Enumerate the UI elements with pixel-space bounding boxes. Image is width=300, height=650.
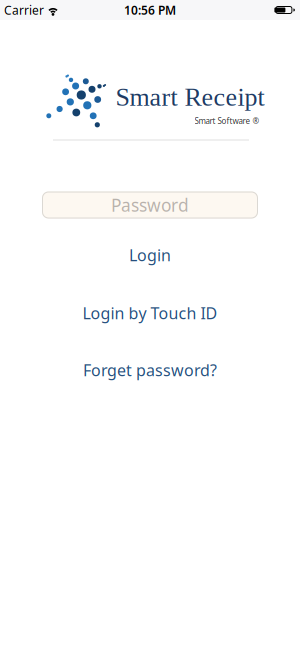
button[interactable]: Forget password? bbox=[83, 359, 217, 381]
staticText: Smart Receipt bbox=[115, 83, 264, 111]
button[interactable]: Login by Touch ID bbox=[82, 302, 217, 324]
staticText: Password bbox=[111, 193, 189, 216]
staticText: Forget password? bbox=[83, 359, 217, 381]
staticText: 10:56 PM bbox=[124, 2, 176, 18]
button[interactable]: Password bbox=[42, 191, 258, 218]
button[interactable]: Login bbox=[129, 244, 171, 266]
staticText: Smart Software ® bbox=[194, 116, 259, 126]
staticText: Carrier bbox=[4, 2, 44, 18]
staticText: Login bbox=[129, 244, 171, 266]
staticText: Login by Touch ID bbox=[82, 302, 217, 324]
